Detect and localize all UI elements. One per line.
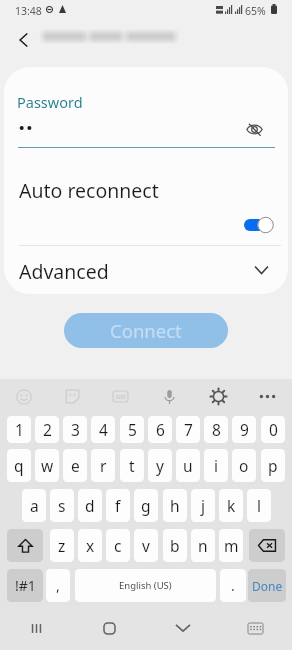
staticText: Password [17, 92, 83, 112]
button[interactable]: o [232, 449, 256, 482]
button[interactable]: Change keyboard [219, 606, 292, 650]
button[interactable]: !#1 [7, 569, 43, 602]
button[interactable]: 1 [7, 416, 31, 443]
button[interactable]: u [176, 449, 200, 482]
button[interactable]: v [134, 529, 158, 562]
button[interactable]: 4 [91, 416, 115, 443]
staticText: r [100, 455, 107, 476]
staticText: 3 [71, 419, 80, 440]
staticText: GIF [116, 393, 126, 401]
staticText: Auto reconnect [19, 177, 159, 204]
staticText: a [30, 495, 39, 516]
button[interactable]: c [106, 529, 130, 562]
staticText: 6 [156, 419, 165, 440]
button[interactable]: y [148, 449, 172, 482]
button[interactable]: 3 [63, 416, 87, 443]
button[interactable]: Delete [249, 529, 285, 562]
button[interactable]: i [204, 449, 228, 482]
staticText: . [231, 576, 235, 595]
staticText: g [141, 495, 151, 516]
button[interactable]: Done [248, 569, 286, 602]
button[interactable]: 5 [120, 416, 144, 443]
button[interactable]: Connect [64, 313, 228, 348]
button[interactable]: d [78, 489, 102, 522]
staticText: 4 [99, 419, 108, 440]
staticText: h [170, 495, 180, 516]
button[interactable]: h [163, 489, 187, 522]
button[interactable]: k [219, 489, 243, 522]
staticText: q [14, 455, 24, 476]
staticText: c [114, 535, 122, 556]
button[interactable]: f [106, 489, 130, 522]
staticText: z [58, 535, 66, 556]
button[interactable]: English (US) [75, 569, 216, 602]
button[interactable]: p [261, 449, 285, 482]
button[interactable]: Show password [242, 117, 266, 141]
staticText: i [214, 455, 218, 476]
staticText: 2 [43, 419, 52, 440]
button[interactable]: Recent apps [0, 606, 73, 650]
button[interactable]: 2 [35, 416, 59, 443]
staticText: o [239, 455, 249, 476]
staticText: n [198, 535, 208, 556]
button[interactable]: GIF [96, 379, 145, 414]
button[interactable]: Home [73, 606, 146, 650]
button[interactable]: Shift [7, 529, 43, 562]
button[interactable] [244, 216, 274, 234]
staticText: v [142, 535, 150, 556]
staticText: w [41, 455, 54, 476]
button[interactable]: Voice input [145, 379, 194, 414]
button[interactable]: Hide keyboard [146, 606, 219, 650]
button[interactable]: Navigate up [7, 24, 39, 56]
button[interactable]: 8 [204, 416, 228, 443]
button[interactable]: n [191, 529, 215, 562]
button[interactable]: j [191, 489, 215, 522]
staticText: Done [252, 578, 283, 594]
button[interactable]: l [247, 489, 271, 522]
staticText: l [257, 495, 261, 516]
button[interactable]: a [22, 489, 46, 522]
button[interactable]: b [163, 529, 187, 562]
staticText: f [115, 495, 121, 516]
staticText: 7 [184, 419, 193, 440]
staticText: 8 [212, 419, 221, 440]
button[interactable]: 7 [176, 416, 200, 443]
staticText: Connect [110, 318, 182, 343]
button[interactable]: r [91, 449, 115, 482]
button[interactable]: Advanced [4, 246, 288, 294]
button[interactable]: . [220, 569, 246, 602]
button[interactable]: t [120, 449, 144, 482]
button[interactable]: Keyboard settings [194, 379, 243, 414]
button[interactable]: x [78, 529, 102, 562]
button[interactable]: Stickers [48, 379, 96, 414]
button[interactable]: Emoji [0, 379, 48, 414]
button[interactable]: 0 [261, 416, 285, 443]
staticText: 9 [240, 419, 249, 440]
staticText: d [85, 495, 95, 516]
staticText: Advanced [19, 258, 109, 285]
button[interactable]: q [7, 449, 31, 482]
button[interactable]: 6 [148, 416, 172, 443]
button[interactable]: g [134, 489, 158, 522]
button[interactable]: z [50, 529, 74, 562]
button[interactable]: Auto reconnect [4, 170, 288, 228]
staticText: !#1 [15, 576, 36, 595]
staticText: English (US) [119, 579, 172, 592]
staticText: 13:48 [15, 4, 42, 18]
button[interactable]: , [46, 569, 70, 602]
button[interactable]: e [63, 449, 87, 482]
staticText: j [201, 495, 205, 516]
staticText: , [56, 576, 60, 595]
staticText: s [58, 495, 66, 516]
staticText: 5 [128, 419, 137, 440]
button[interactable]: 9 [232, 416, 256, 443]
staticText: t [129, 455, 135, 476]
staticText: e [71, 455, 80, 476]
button[interactable]: More options [243, 379, 292, 414]
staticText: m [224, 535, 239, 556]
staticText: 65% [245, 4, 266, 18]
button[interactable]: w [35, 449, 59, 482]
button[interactable]: m [219, 529, 243, 562]
staticText: 1 [15, 419, 24, 440]
button[interactable]: s [50, 489, 74, 522]
